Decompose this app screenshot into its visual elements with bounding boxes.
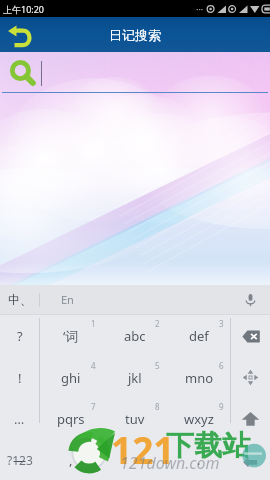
button[interactable]: … xyxy=(0,398,39,439)
button[interactable]: mno xyxy=(167,357,231,398)
staticText: 121 xyxy=(111,424,175,474)
button[interactable]: . xyxy=(167,439,231,480)
button[interactable]: Back xyxy=(2,19,36,51)
staticText: 日记搜索 xyxy=(109,27,161,43)
staticText: . xyxy=(197,451,201,469)
staticText: 5 xyxy=(155,360,160,371)
staticText: wxyz xyxy=(184,410,214,428)
staticText: … xyxy=(14,410,25,428)
button[interactable]: abc xyxy=(103,315,167,357)
button[interactable] xyxy=(103,439,167,480)
staticText: 7 xyxy=(91,401,96,412)
staticText: ? xyxy=(17,327,23,345)
button[interactable]: tuv xyxy=(103,398,167,439)
staticText: 1 xyxy=(91,318,96,329)
button[interactable]: ?123 xyxy=(0,439,39,480)
button[interactable]: def xyxy=(167,315,231,357)
button[interactable]: wxyz xyxy=(167,398,231,439)
button[interactable]: jkl xyxy=(103,357,167,398)
button[interactable]: ghi xyxy=(39,357,103,398)
staticText: En xyxy=(61,292,74,307)
staticText: pqrs xyxy=(57,410,85,428)
button[interactable]: ? xyxy=(0,315,39,357)
button[interactable]: enter xyxy=(231,439,270,480)
staticText: 121down.com xyxy=(120,452,220,474)
staticText: jkl xyxy=(128,369,142,387)
button[interactable]: — xyxy=(0,439,39,480)
button[interactable]: Voice input xyxy=(230,285,270,314)
staticText: 8 xyxy=(155,401,160,412)
staticText: 中、 xyxy=(8,292,32,307)
staticText: ··· xyxy=(196,3,204,15)
button[interactable]: 中、 xyxy=(0,285,39,314)
staticText: 6 xyxy=(219,360,224,371)
staticText: def xyxy=(189,327,209,345)
staticText: ! xyxy=(18,369,22,387)
staticText: , xyxy=(69,451,73,469)
button[interactable]: del xyxy=(231,315,270,357)
staticText: 上午10:20 xyxy=(3,3,45,15)
button[interactable]: , xyxy=(39,439,103,480)
staticText: tuv xyxy=(125,410,145,428)
staticText: 4 xyxy=(91,360,96,371)
button[interactable]: shift xyxy=(231,398,270,439)
staticText: 9 xyxy=(219,401,224,412)
staticText: 下载站 xyxy=(166,428,250,463)
staticText: 2 xyxy=(155,318,160,329)
staticText: ghi xyxy=(61,369,81,387)
button[interactable]: move xyxy=(231,357,270,398)
button[interactable]: ! xyxy=(0,357,39,398)
staticText: mno xyxy=(185,369,214,387)
button[interactable]: ‘词 xyxy=(39,315,103,357)
staticText: ?123 xyxy=(7,452,33,468)
button[interactable]: En xyxy=(61,285,230,314)
staticText: 3 xyxy=(219,318,224,329)
staticText: ‘词 xyxy=(63,327,79,345)
staticText: abc xyxy=(124,327,146,345)
staticText: — xyxy=(13,451,27,469)
button[interactable]: pqrs xyxy=(39,398,103,439)
